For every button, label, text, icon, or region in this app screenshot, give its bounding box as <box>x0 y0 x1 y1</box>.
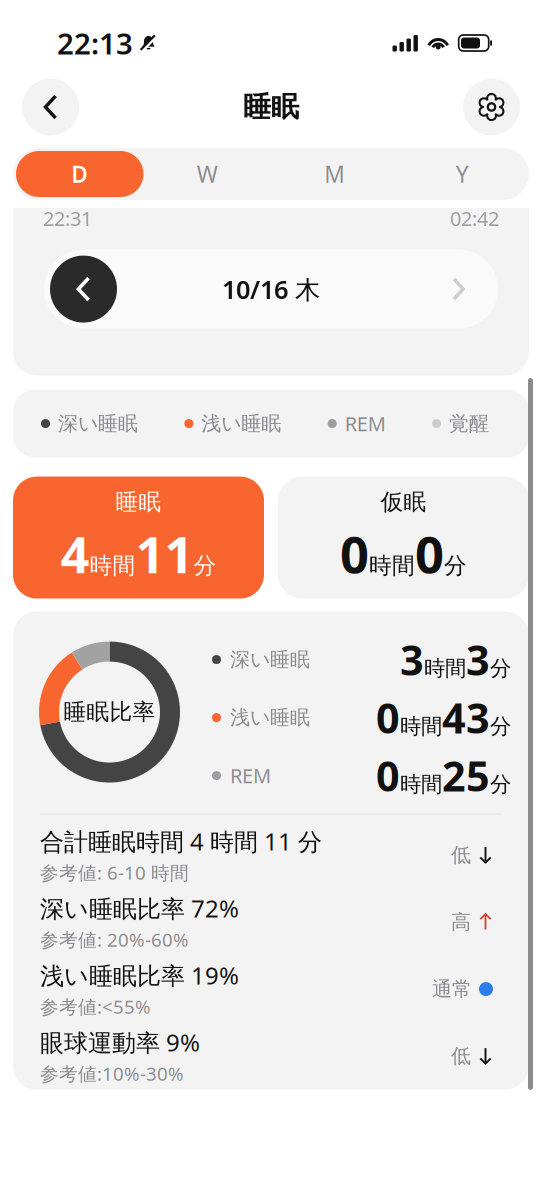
staticText: 睡眠比率 <box>63 698 155 726</box>
staticText: 43 <box>442 690 490 745</box>
staticText: 深い睡眠 <box>230 647 310 672</box>
button[interactable]: 浅い睡眠比率 19% <box>13 956 529 1023</box>
staticText: 分 <box>193 552 216 579</box>
staticText: 浅い睡眠比率 19% <box>40 959 239 991</box>
staticText: 深い睡眠 <box>58 411 138 436</box>
button[interactable]: Settings <box>463 78 520 135</box>
staticText: 3 <box>400 632 424 687</box>
staticText: 睡眠 <box>115 488 161 516</box>
staticText: 3 <box>466 632 490 687</box>
staticText: 高 <box>451 910 471 934</box>
staticText: REM <box>230 762 271 789</box>
button[interactable]: M <box>271 151 398 197</box>
staticText: 0 <box>376 690 400 745</box>
staticText: 浅い睡眠 <box>201 411 281 436</box>
staticText: 02:42 <box>450 205 499 232</box>
staticText: 時間 <box>400 713 442 740</box>
button[interactable]: D <box>16 151 143 197</box>
staticText: 22:13 <box>57 23 133 62</box>
staticText: 参考値: 6-10 時間 <box>40 860 189 885</box>
staticText: 合計睡眠時間 4 時間 11 分 <box>40 825 322 857</box>
button[interactable]: W <box>143 151 271 197</box>
staticText: 時間 <box>400 771 442 798</box>
staticText: 分 <box>490 713 511 740</box>
button[interactable]: 合計睡眠時間 4 時間 11 分 <box>13 822 529 889</box>
button[interactable]: Y <box>398 151 526 197</box>
staticText: 22:31 <box>43 205 92 232</box>
staticText: 時間 <box>369 552 415 579</box>
staticText: 参考値:<55% <box>40 994 151 1019</box>
staticText: REM <box>345 410 386 437</box>
staticText: 10/16 木 <box>222 272 320 306</box>
button[interactable]: Next day <box>425 256 492 323</box>
staticText: 4 <box>60 520 89 587</box>
staticText: W <box>197 159 218 189</box>
staticText: 分 <box>490 771 511 798</box>
staticText: 眼球運動率 9% <box>40 1026 200 1058</box>
staticText: 時間 <box>89 552 135 579</box>
staticText: 低 <box>451 843 471 867</box>
staticText: 参考値: 20%-60% <box>40 927 189 952</box>
staticText: 25 <box>442 748 490 803</box>
staticText: M <box>324 159 345 189</box>
staticText: 覚醒 <box>449 411 489 436</box>
staticText: D <box>71 159 88 189</box>
staticText: 深い睡眠比率 72% <box>40 892 239 924</box>
button[interactable]: 深い睡眠比率 72% <box>13 889 529 956</box>
staticText: 11 <box>135 520 193 587</box>
staticText: 0 <box>340 520 369 587</box>
staticText: 分 <box>490 655 511 682</box>
staticText: 仮眠 <box>380 488 426 516</box>
button[interactable]: 眼球運動率 9% <box>13 1023 529 1090</box>
staticText: 睡眠 <box>243 90 299 124</box>
staticText: 浅い睡眠 <box>230 705 310 730</box>
staticText: 参考値:10%-30% <box>40 1061 184 1086</box>
staticText: 時間 <box>424 655 466 682</box>
button[interactable]: Previous day <box>50 256 117 323</box>
button[interactable]: Back <box>22 78 79 135</box>
staticText: 分 <box>444 552 467 579</box>
staticText: 0 <box>376 748 400 803</box>
staticText: 通常 <box>432 977 472 1001</box>
staticText: Y <box>456 159 469 189</box>
staticText: 低 <box>451 1044 471 1068</box>
staticText: 0 <box>415 520 444 587</box>
